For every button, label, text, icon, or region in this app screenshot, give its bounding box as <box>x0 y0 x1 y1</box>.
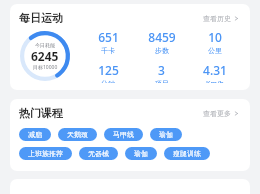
button[interactable]: 减脂 <box>19 128 51 141</box>
button[interactable]: 今日耗能 <box>19 30 71 82</box>
staticText: 125 <box>98 62 119 78</box>
staticText: 4.31 <box>203 62 227 78</box>
button[interactable]: 125 <box>81 62 135 83</box>
button[interactable]: 651 <box>81 29 135 55</box>
button[interactable]: 上班族推荐 <box>19 147 72 160</box>
staticText: 减脂 <box>28 130 42 139</box>
staticText: 上班族推荐 <box>28 149 63 158</box>
button[interactable]: 天鹅颈 <box>58 128 97 141</box>
staticText: 瑜伽 <box>134 149 148 158</box>
button[interactable]: 4.31 <box>188 62 241 83</box>
button[interactable]: 无器械 <box>79 147 118 160</box>
staticText: 3 <box>158 62 165 78</box>
button[interactable]: 马甲线 <box>104 128 143 141</box>
button[interactable]: 查看更多 <box>201 107 241 120</box>
staticText: Km/h <box>206 79 224 83</box>
staticText: 马甲线 <box>113 130 134 139</box>
staticText: 651 <box>98 29 119 45</box>
staticText: 千卡 <box>101 46 115 55</box>
staticText: 今日耗能 <box>35 42 55 48</box>
button[interactable]: 瘦腿训练 <box>164 147 210 160</box>
button[interactable]: 8459 <box>135 29 188 55</box>
staticText: 分钟 <box>101 79 115 83</box>
staticText: 瑜伽 <box>159 130 173 139</box>
staticText: 热门课程 <box>19 106 63 120</box>
staticText: 步数 <box>155 46 169 55</box>
staticText: 无器械 <box>88 149 109 158</box>
staticText: 公里 <box>208 46 222 55</box>
button[interactable]: 3 <box>135 62 188 83</box>
button[interactable]: 瑜伽 <box>150 128 182 141</box>
staticText: 10 <box>208 29 222 45</box>
staticText: 项目 <box>155 79 169 83</box>
button[interactable]: 10 <box>188 29 241 55</box>
staticText: 6245 <box>31 48 59 64</box>
staticText: 天鹅颈 <box>67 130 88 139</box>
staticText: 瘦腿训练 <box>173 149 201 158</box>
button[interactable]: 瑜伽 <box>125 147 157 160</box>
staticText: 目标10000 <box>33 64 58 71</box>
button[interactable]: 查看历史 <box>201 12 241 25</box>
staticText: 每日运动 <box>19 11 63 25</box>
staticText: 查看历史 <box>203 14 231 23</box>
staticText: 查看更多 <box>203 109 231 118</box>
staticText: 8459 <box>148 29 176 45</box>
